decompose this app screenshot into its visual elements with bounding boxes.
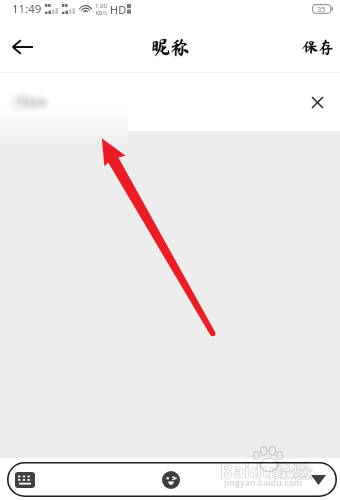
button[interactable]: Keyboard bbox=[10, 465, 40, 495]
button[interactable]: Clear text bbox=[294, 77, 340, 127]
staticText: jingyan.baidu.com bbox=[224, 477, 303, 489]
staticText: HD bbox=[110, 2, 127, 17]
button[interactable]: Hide keyboard bbox=[305, 467, 331, 493]
staticText: Baidu经验 bbox=[220, 458, 313, 484]
button[interactable]: Emoji bbox=[157, 466, 185, 494]
staticText: 1.00 bbox=[95, 2, 107, 10]
staticText: 11:49 bbox=[12, 1, 42, 17]
staticText: 昵称 bbox=[151, 37, 190, 56]
staticText: 保存 bbox=[302, 39, 335, 55]
button[interactable]: 保存 bbox=[294, 21, 340, 72]
staticText: KB/S bbox=[96, 10, 107, 17]
button[interactable]: Back bbox=[0, 21, 44, 72]
staticText: 35 bbox=[317, 4, 326, 14]
